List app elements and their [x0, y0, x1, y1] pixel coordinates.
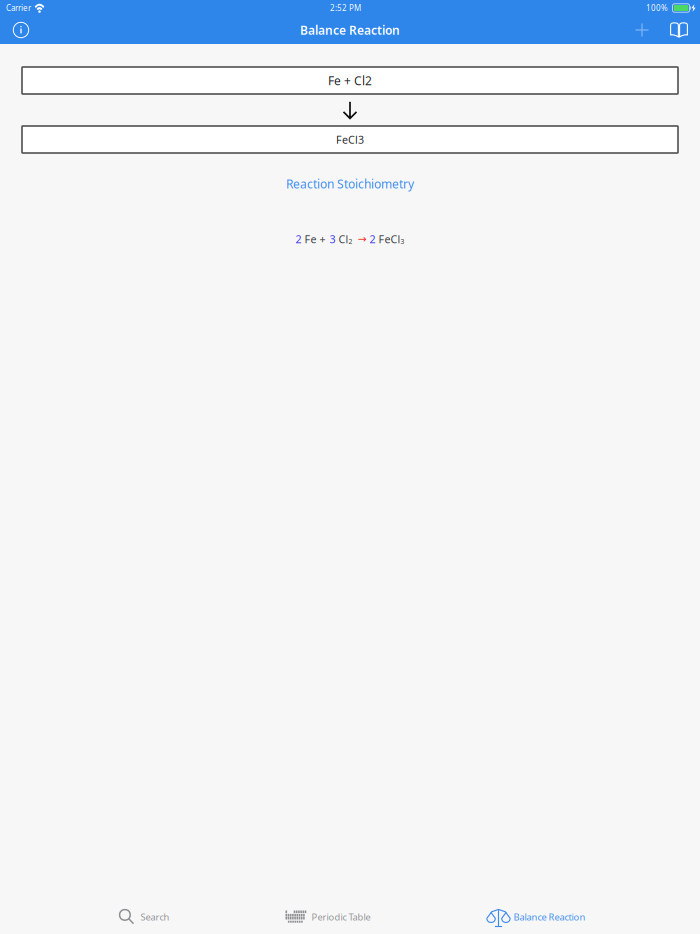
staticText: 2: [295, 232, 301, 246]
staticText: 100%: [646, 3, 668, 13]
button[interactable]: Glossary: [659, 16, 700, 44]
staticText: Carrier: [6, 3, 31, 13]
button[interactable]: Periodic Table: [275, 900, 380, 934]
button[interactable]: FeCl3: [22, 126, 678, 153]
staticText: Balance Reaction: [300, 22, 400, 38]
staticText: Fe + Cl2: [328, 72, 372, 88]
staticText: Fe +: [301, 232, 328, 246]
staticText: Search: [140, 911, 169, 923]
button[interactable]: Search: [108, 900, 179, 934]
button[interactable]: Balance Reaction: [478, 900, 595, 934]
staticText: Reaction Stoichiometry: [286, 176, 414, 192]
staticText: FeCl3: [336, 132, 364, 147]
button[interactable]: Reaction Stoichiometry: [276, 173, 424, 195]
staticText: FeCl: [375, 232, 400, 246]
staticText: 2: [369, 232, 375, 246]
button[interactable]: Info: [0, 16, 42, 44]
staticText: 3: [329, 232, 335, 246]
staticText: →: [357, 233, 366, 245]
staticText: Cl: [335, 232, 348, 246]
staticText: 2: [348, 237, 352, 246]
staticText: 2:52 PM: [330, 3, 361, 13]
button[interactable]: Fe + Cl2: [22, 67, 678, 94]
button[interactable]: Add: [622, 16, 659, 44]
staticText: Balance Reaction: [513, 911, 585, 923]
staticText: 3: [400, 237, 404, 246]
staticText: Periodic Table: [311, 911, 370, 923]
